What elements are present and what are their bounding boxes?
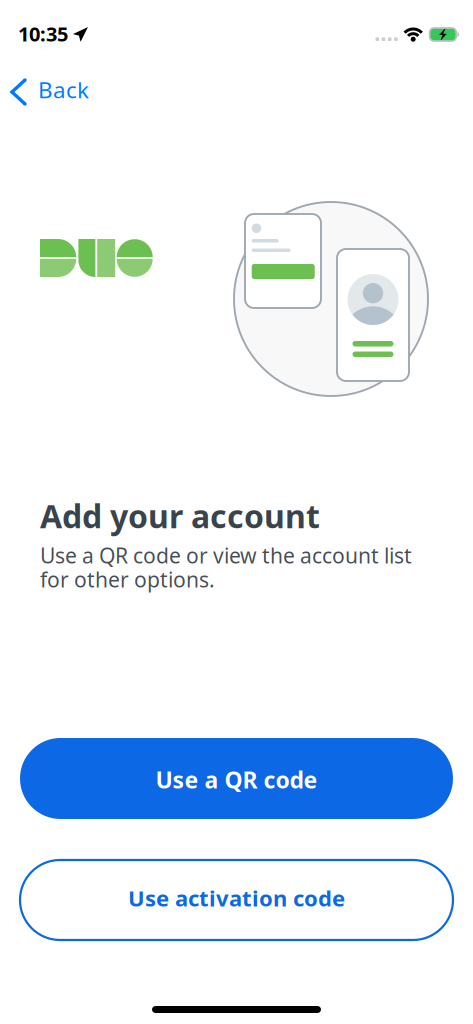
staticText: 10:35 [18,20,68,47]
staticText: Use a QR code [155,764,317,795]
button[interactable]: Back [0,58,103,107]
staticText: Use activation code [128,883,345,913]
staticText: Add your account [40,494,320,538]
staticText: Use a QR code or view the account list [40,541,412,570]
staticText: Back [38,74,89,105]
button[interactable]: Use activation code [20,860,453,940]
button[interactable]: Use a QR code [20,738,453,819]
staticText: for other options. [40,565,215,594]
